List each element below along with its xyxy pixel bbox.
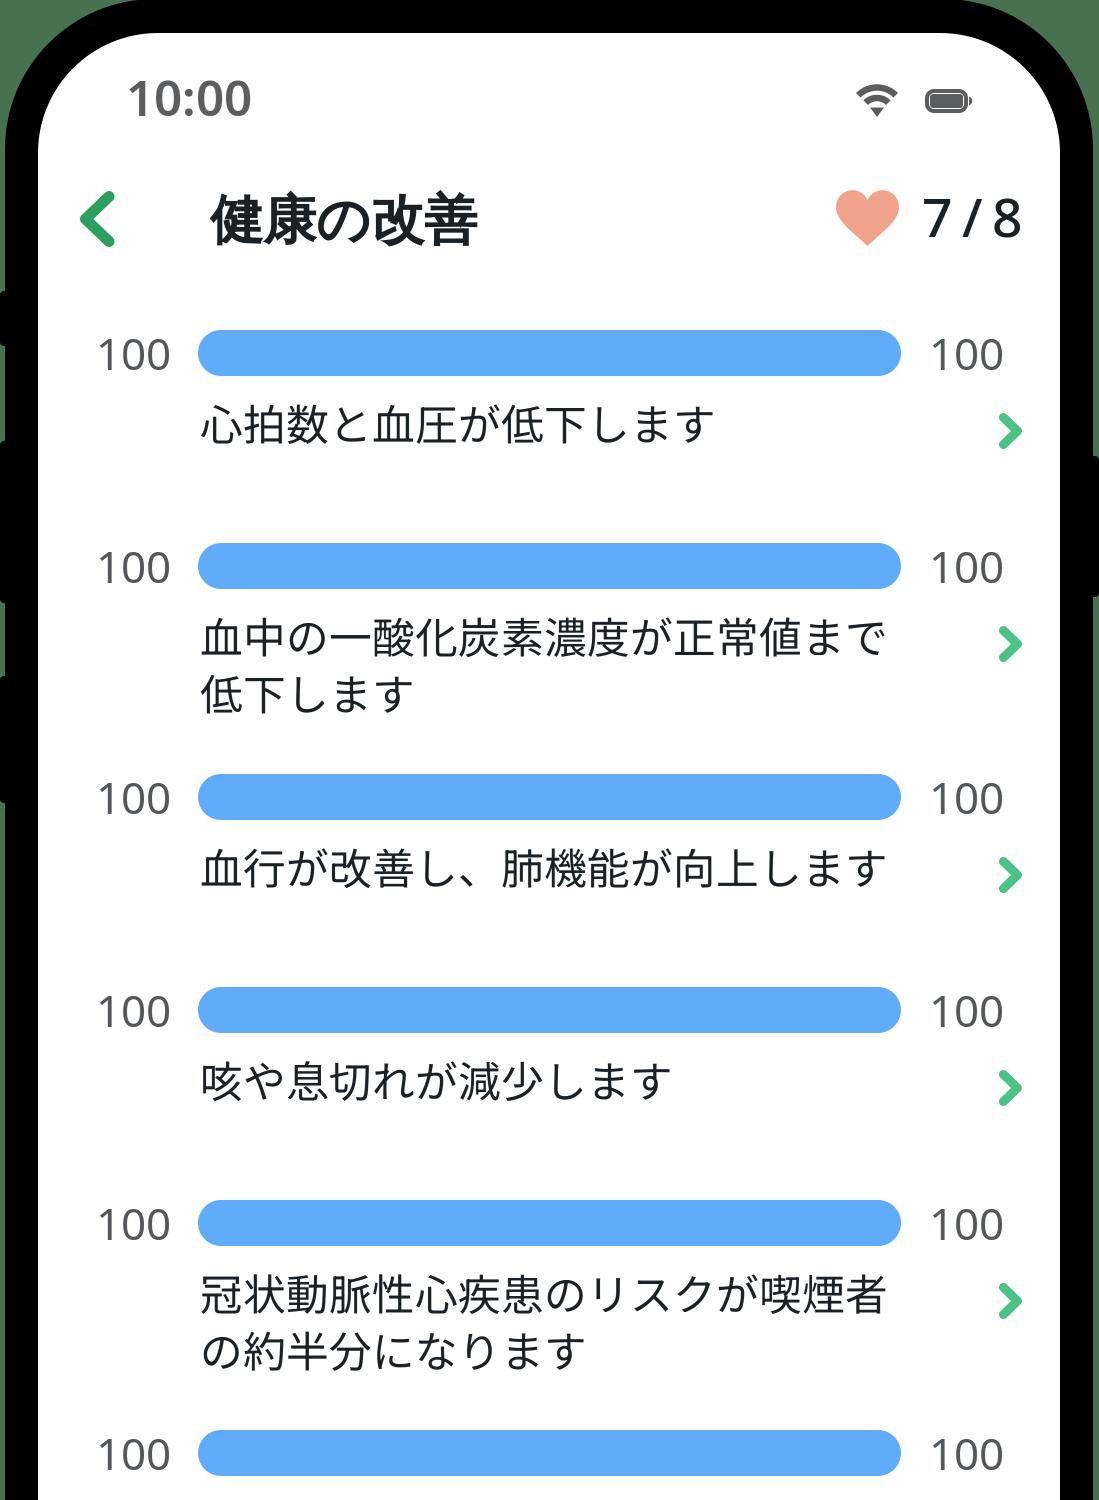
staticText: 100 xyxy=(929,768,1004,826)
staticText: 100 xyxy=(96,768,171,826)
button[interactable]: 100 xyxy=(38,987,1060,1182)
staticText: 100 xyxy=(96,1424,171,1482)
staticText: 100 xyxy=(929,981,1004,1039)
staticText: 心拍数と血圧が低下します xyxy=(200,391,716,453)
button[interactable]: Back xyxy=(56,171,154,267)
button[interactable]: 100 xyxy=(38,774,1060,969)
staticText: の約半分になります xyxy=(200,1318,587,1380)
staticText: 健康の改善 xyxy=(210,187,477,254)
staticText: 100 xyxy=(96,1194,171,1252)
staticText: 100 xyxy=(96,981,171,1039)
staticText: 100 xyxy=(96,537,171,595)
staticText: 血行が改善し、肺機能が向上します xyxy=(200,835,888,897)
staticText: 血中の一酸化炭素濃度が正常値まで xyxy=(200,604,888,666)
staticText: 100 xyxy=(96,324,171,382)
staticText: 100 xyxy=(929,1194,1004,1252)
button[interactable]: 100 xyxy=(38,330,1060,525)
staticText: 100 xyxy=(929,537,1004,595)
staticText: 低下します xyxy=(200,661,415,723)
button[interactable]: 100 xyxy=(38,543,1060,756)
staticText: 10:00 xyxy=(126,64,252,129)
staticText: 冠状動脈性心疾患のリスクが喫煙者 xyxy=(200,1261,888,1323)
staticText: 100 xyxy=(929,1424,1004,1482)
staticText: 7 / 8 xyxy=(922,181,1023,252)
button[interactable]: 100 xyxy=(38,1200,1060,1413)
staticText: 100 xyxy=(929,324,1004,382)
staticText: 咳や息切れが減少します xyxy=(200,1048,673,1110)
button[interactable]: 100 xyxy=(38,1430,1060,1500)
